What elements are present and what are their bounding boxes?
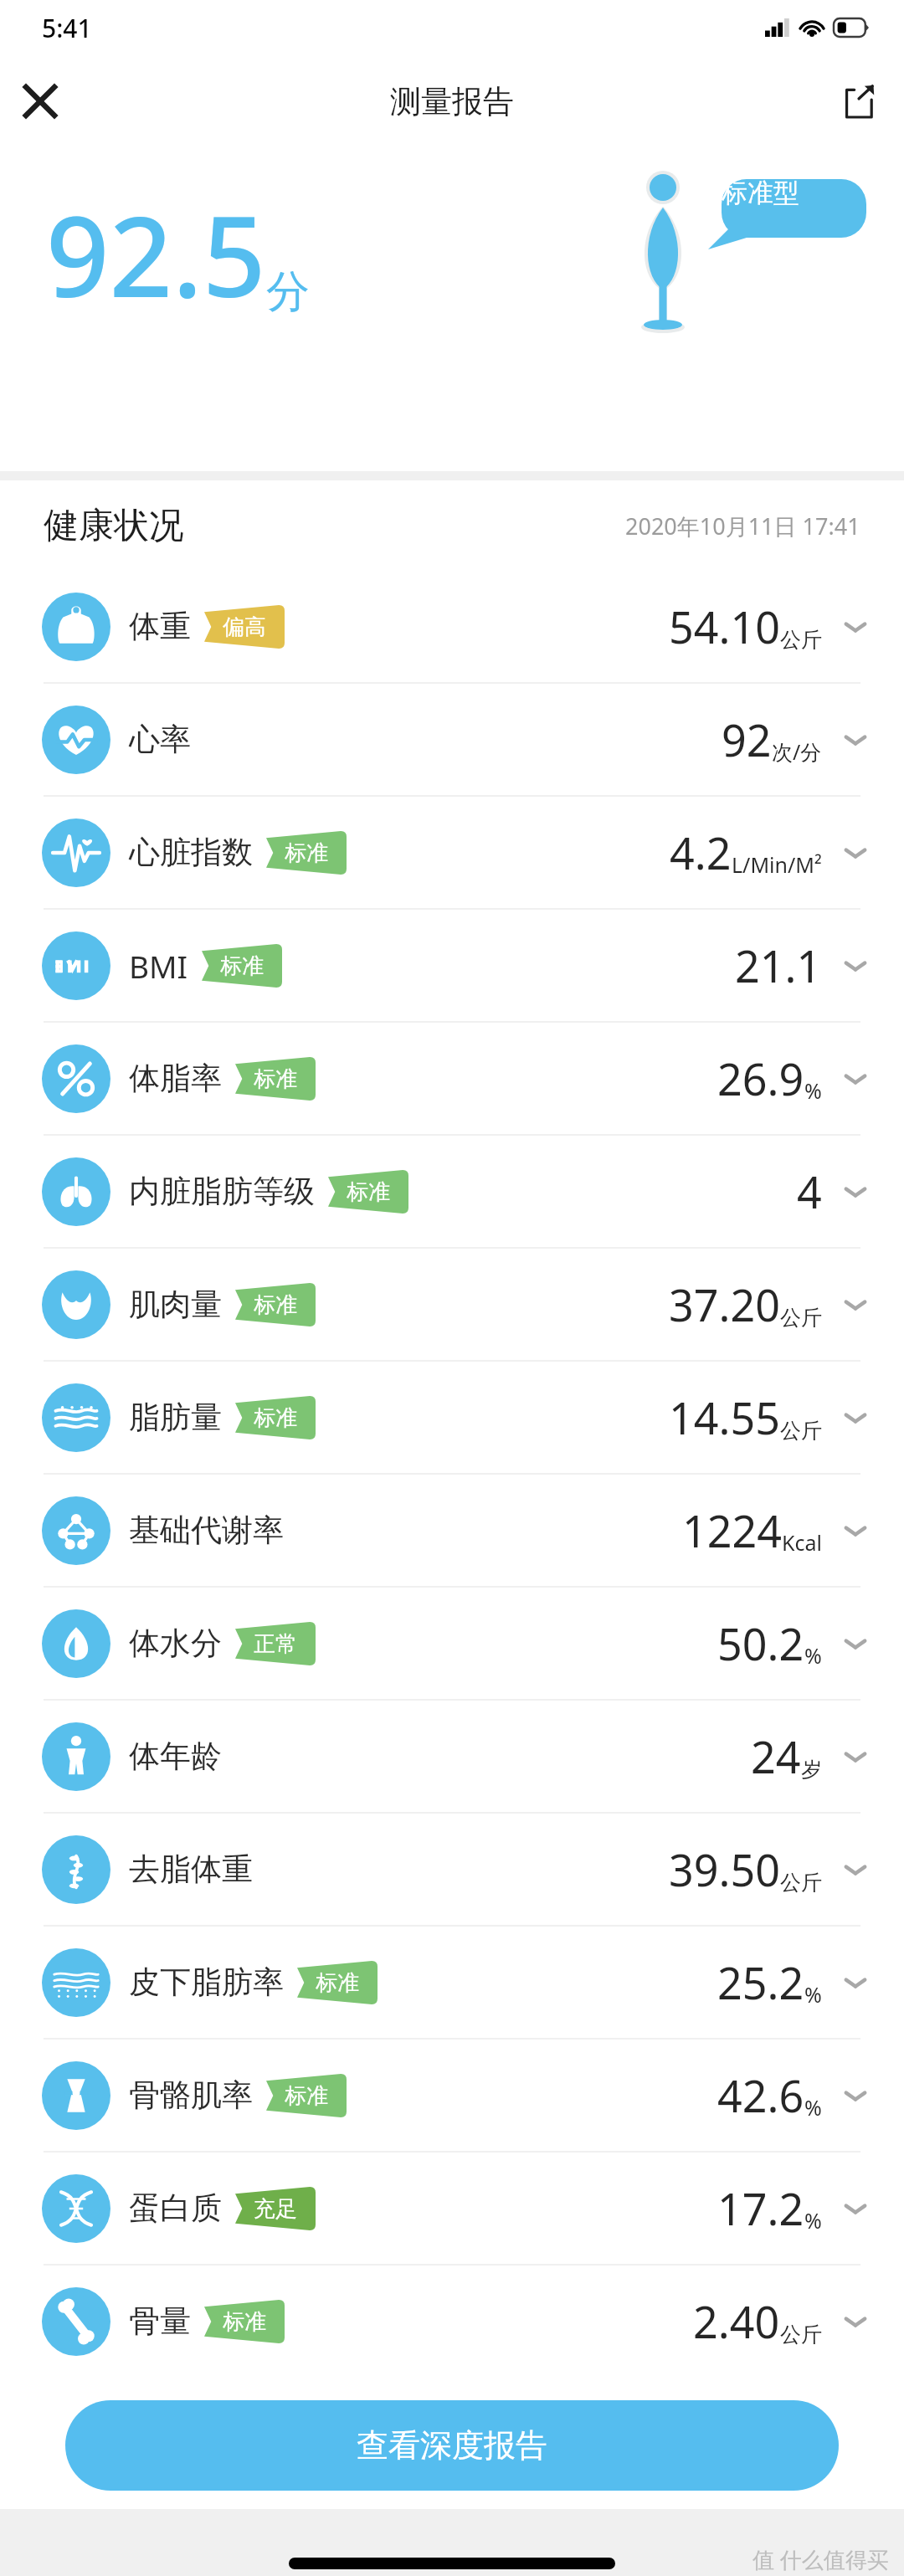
staticText: 92 bbox=[722, 710, 772, 769]
button[interactable]: 骨骼肌率 bbox=[0, 2040, 904, 2151]
staticText: 体重 bbox=[129, 607, 191, 646]
staticText: 肌肉量 bbox=[129, 1285, 222, 1324]
staticText: 标准 bbox=[254, 1065, 297, 1093]
staticText: 标准型 bbox=[722, 177, 799, 209]
button[interactable]: 体脂率 bbox=[0, 1023, 904, 1134]
staticText: 公斤 bbox=[780, 1870, 822, 1896]
staticText: 42.6 bbox=[717, 2065, 804, 2125]
button[interactable]: 查看深度报告 bbox=[65, 2400, 839, 2491]
button[interactable]: 内脏脂肪等级 bbox=[0, 1136, 904, 1247]
staticText: 2020年10月11日 17:41 bbox=[625, 511, 860, 541]
staticText: 健康状况 bbox=[44, 504, 184, 548]
button[interactable]: 体年龄 bbox=[0, 1701, 904, 1812]
button[interactable]: Share bbox=[829, 71, 889, 131]
staticText: 14.55 bbox=[669, 1388, 780, 1447]
staticText: 标准 bbox=[220, 952, 264, 980]
staticText: 标准 bbox=[223, 2308, 266, 2336]
button[interactable]: 皮下脂肪率 bbox=[0, 1927, 904, 2038]
staticText: 37.20 bbox=[669, 1275, 780, 1334]
button[interactable]: 去脂体重 bbox=[0, 1814, 904, 1925]
staticText: 标准 bbox=[285, 2082, 328, 2110]
button[interactable]: 骨量 bbox=[0, 2266, 904, 2377]
staticText: 标准 bbox=[316, 1969, 359, 1997]
staticText: 4 bbox=[797, 1162, 822, 1221]
staticText: 公斤 bbox=[780, 1418, 822, 1444]
button[interactable]: BMI bbox=[0, 910, 904, 1021]
staticText: % bbox=[804, 1980, 822, 2009]
staticText: 去脂体重 bbox=[129, 1850, 253, 1889]
staticText: 4.2 bbox=[670, 823, 732, 882]
button[interactable]: 体重 bbox=[0, 571, 904, 682]
button[interactable]: 心率 bbox=[0, 684, 904, 795]
staticText: 蛋白质 bbox=[129, 2189, 222, 2228]
button[interactable]: 脂肪量 bbox=[0, 1362, 904, 1473]
staticText: 查看深度报告 bbox=[357, 2425, 547, 2466]
staticText: 皮下脂肪率 bbox=[129, 1963, 284, 2002]
staticText: 基础代谢率 bbox=[129, 1511, 284, 1550]
staticText: % bbox=[804, 2093, 822, 2122]
staticText: 心率 bbox=[129, 720, 191, 759]
staticText: 17.2 bbox=[717, 2178, 804, 2238]
staticText: 50.2 bbox=[717, 1614, 804, 1673]
staticText: 39.50 bbox=[669, 1840, 780, 1899]
staticText: 公斤 bbox=[780, 1305, 822, 1331]
button[interactable]: 心脏指数 bbox=[0, 797, 904, 908]
staticText: 标准 bbox=[285, 839, 328, 867]
staticText: 内脏脂肪等级 bbox=[129, 1172, 315, 1211]
button[interactable]: 肌肉量 bbox=[0, 1249, 904, 1360]
staticText: % bbox=[804, 1641, 822, 1670]
staticText: L/Min/M² bbox=[732, 850, 822, 879]
staticText: 24 bbox=[751, 1727, 801, 1786]
staticText: 92.5 bbox=[46, 179, 266, 330]
staticText: % bbox=[804, 2206, 822, 2235]
staticText: 1224 bbox=[682, 1501, 782, 1560]
staticText: 公斤 bbox=[780, 627, 822, 653]
staticText: Kcal bbox=[782, 1528, 822, 1557]
staticText: 岁 bbox=[801, 1757, 822, 1783]
staticText: 值 什么值得买 bbox=[752, 2544, 889, 2574]
staticText: 体年龄 bbox=[129, 1737, 222, 1776]
staticText: 25.2 bbox=[717, 1953, 804, 2012]
staticText: 骨量 bbox=[129, 2301, 191, 2341]
staticText: 脂肪量 bbox=[129, 1398, 222, 1437]
staticText: % bbox=[804, 1076, 822, 1105]
staticText: 2.40 bbox=[693, 2291, 780, 2351]
button[interactable]: 基础代谢率 bbox=[0, 1475, 904, 1586]
staticText: 骨骼肌率 bbox=[129, 2076, 253, 2115]
staticText: 21.1 bbox=[735, 936, 822, 995]
staticText: 标准 bbox=[347, 1178, 390, 1206]
staticText: 标准 bbox=[254, 1404, 297, 1432]
staticText: 充足 bbox=[254, 2195, 297, 2223]
staticText: 体水分 bbox=[129, 1624, 222, 1663]
staticText: BMI bbox=[129, 945, 188, 987]
staticText: 心脏指数 bbox=[129, 833, 253, 872]
staticText: 26.9 bbox=[717, 1049, 804, 1108]
staticText: 测量报告 bbox=[390, 82, 514, 121]
staticText: 正常 bbox=[254, 1630, 297, 1658]
button[interactable]: Close bbox=[10, 71, 70, 131]
staticText: 公斤 bbox=[780, 2322, 822, 2348]
button[interactable]: 体水分 bbox=[0, 1588, 904, 1699]
staticText: 次/分 bbox=[772, 737, 822, 766]
staticText: 5:41 bbox=[42, 11, 92, 45]
button[interactable]: 蛋白质 bbox=[0, 2153, 904, 2264]
staticText: 标准 bbox=[254, 1291, 297, 1319]
staticText: 分 bbox=[266, 264, 310, 320]
staticText: 偏高 bbox=[223, 613, 266, 641]
staticText: 54.10 bbox=[669, 597, 780, 656]
staticText: 体脂率 bbox=[129, 1059, 222, 1098]
